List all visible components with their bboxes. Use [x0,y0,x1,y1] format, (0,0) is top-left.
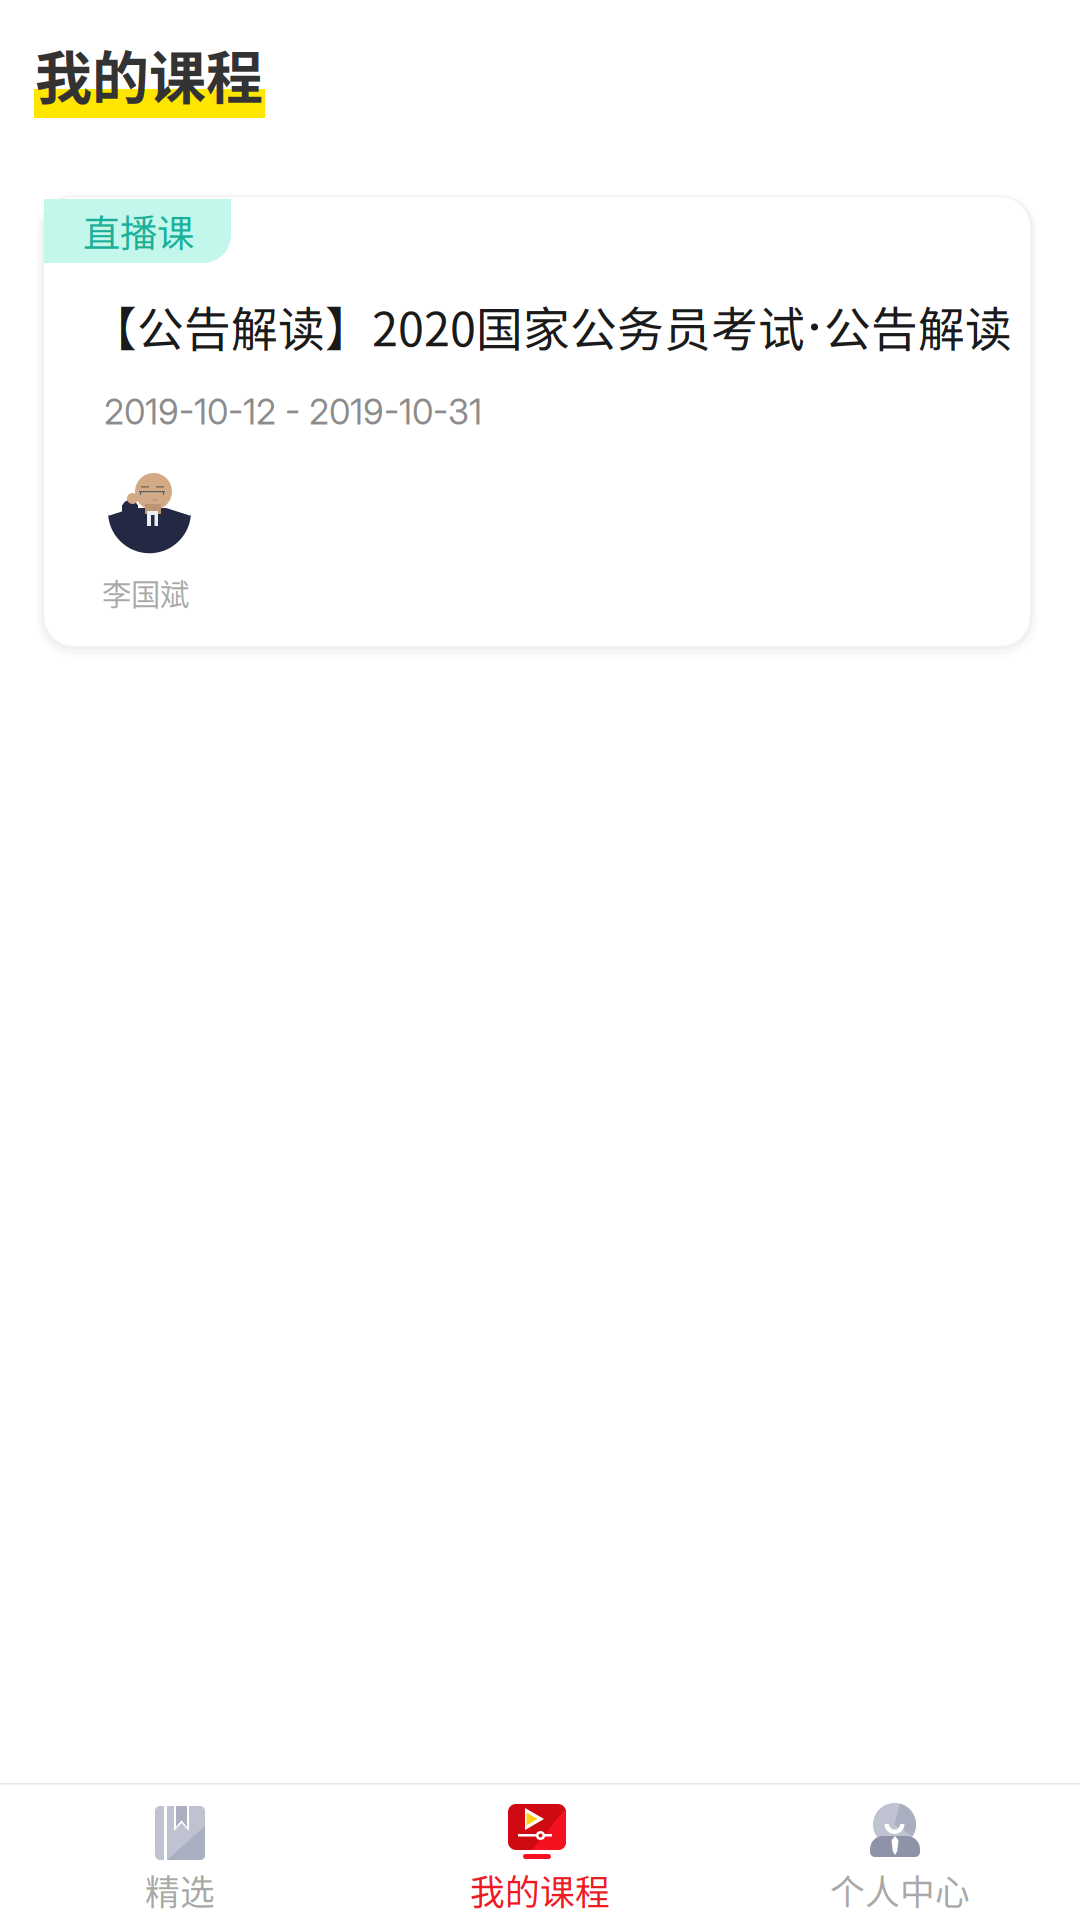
staticText: 2019-10-12 - 2019-10-31 [104,391,482,433]
staticText: 精选 [145,1865,215,1915]
button[interactable]: 直播课 [44,197,1030,646]
staticText: 个人中心 [830,1865,970,1915]
button[interactable]: 个人中心 [720,1785,1080,1920]
staticText: 公告解读 [824,292,1012,360]
button[interactable]: 我的课程 [360,1785,720,1920]
staticText: 直播课 [83,204,194,258]
staticText: 我的课程 [35,33,263,115]
staticText: 【公告解读】2020国家公务员考试 [90,292,805,360]
button[interactable]: 精选 [0,1785,360,1920]
staticText: 我的课程 [470,1865,610,1915]
staticText: 李国斌 [102,571,189,614]
